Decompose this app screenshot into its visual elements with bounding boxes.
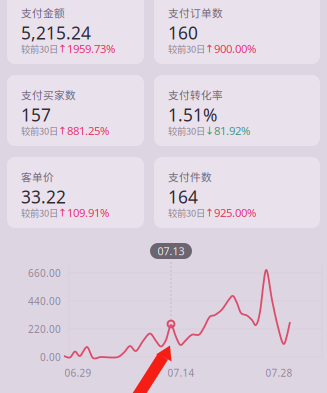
staticText: 支付订单数 [168, 5, 223, 20]
staticText: ↑ [58, 124, 67, 137]
staticText: ↑ [58, 206, 67, 219]
staticText: 900.00% [214, 41, 256, 56]
staticText: 较前30日 [168, 42, 205, 55]
button[interactable]: 支付件数 [154, 157, 320, 228]
staticText: 220.00 [28, 322, 61, 336]
staticText: 157 [21, 103, 51, 127]
staticText: 164 [168, 185, 198, 209]
staticText: 07.28 [265, 366, 292, 380]
staticText: 1959.73% [67, 41, 115, 56]
staticText: 客单价 [21, 169, 54, 184]
staticText: 660.00 [28, 266, 61, 280]
staticText: 0.00 [40, 350, 61, 364]
staticText: 支付件数 [168, 169, 212, 184]
staticText: ↑ [58, 42, 67, 55]
staticText: ↓ [205, 124, 214, 137]
staticText: 160 [168, 21, 198, 45]
staticText: 109.91% [67, 205, 109, 220]
staticText: 925.00% [214, 205, 256, 220]
button[interactable]: 客单价 [7, 157, 144, 228]
staticText: 81.92% [214, 123, 250, 138]
staticText: 06.29 [64, 366, 91, 380]
staticText: 1.51% [168, 103, 217, 127]
staticText: ↑ [205, 206, 214, 219]
button[interactable]: 支付买家数 [7, 75, 144, 146]
staticText: 881.25% [67, 123, 109, 138]
staticText: 较前30日 [168, 206, 205, 219]
staticText: 较前30日 [21, 206, 58, 219]
staticText: 支付金额 [21, 5, 65, 20]
button[interactable]: 支付订单数 [154, 0, 320, 64]
staticText: 支付买家数 [21, 87, 76, 102]
staticText: 5,215.24 [21, 21, 91, 45]
staticText: ↑ [205, 42, 214, 55]
staticText: 33.22 [21, 185, 66, 209]
staticText: 支付转化率 [168, 87, 223, 102]
staticText: 较前30日 [21, 42, 58, 55]
staticText: 440.00 [28, 294, 61, 308]
staticText: 较前30日 [21, 124, 58, 137]
staticText: 较前30日 [168, 124, 205, 137]
button[interactable]: 支付金额 [7, 0, 144, 64]
staticText: 07.13 [157, 244, 184, 258]
button[interactable]: 支付转化率 [154, 75, 320, 146]
staticText: 07.14 [167, 366, 194, 380]
